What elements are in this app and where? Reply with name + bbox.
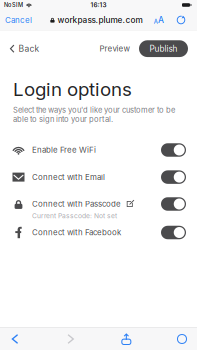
- staticText: Current Passcode: Not set: [32, 212, 117, 220]
- staticText: No SIM: [4, 2, 23, 8]
- staticText: workpass.plume.com: [57, 15, 142, 25]
- button[interactable]: Back: [3, 328, 27, 350]
- staticText: Connect with Email: [32, 172, 105, 182]
- button[interactable]: Cancel: [2, 11, 35, 29]
- button[interactable]: Connect with Passcode: [0, 190, 197, 218]
- staticText: Publish: [149, 44, 177, 54]
- button[interactable]: Share: [114, 328, 138, 350]
- button[interactable]: Connect with Facebook: [0, 218, 197, 246]
- staticText: Connect with Passcode: [32, 199, 121, 209]
- staticText: A: [158, 15, 164, 25]
- button[interactable]: Back: [10, 39, 39, 58]
- staticText: Preview: [99, 44, 130, 53]
- button[interactable]: Enable Free WiFi: [0, 136, 197, 164]
- staticText: Select the ways you'd like your customer…: [13, 105, 175, 124]
- button[interactable]: Preview: [96, 40, 133, 57]
- button[interactable]: Reload page: [175, 14, 187, 26]
- button[interactable]: Bookmarks: [170, 328, 194, 350]
- staticText: 16:13: [90, 1, 106, 9]
- staticText: Enable Free WiFi: [32, 145, 96, 155]
- button[interactable]: Publish: [139, 40, 188, 57]
- staticText: Cancel: [5, 15, 32, 25]
- button[interactable]: Connect with Email: [0, 164, 197, 190]
- button[interactable]: Text size options: [152, 11, 166, 29]
- staticText: Connect with Facebook: [32, 228, 121, 237]
- button[interactable]: Forward: [59, 328, 83, 350]
- staticText: Login options: [13, 78, 132, 100]
- staticText: Back: [18, 43, 39, 54]
- staticText: A: [154, 18, 158, 25]
